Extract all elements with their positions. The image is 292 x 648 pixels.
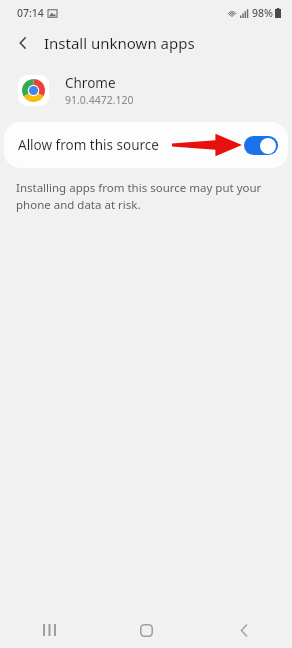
button[interactable]: Home <box>98 612 195 648</box>
staticText: Allow from this source <box>18 136 159 154</box>
staticText: Installing apps from this source may put… <box>16 180 262 213</box>
button[interactable]: Back <box>8 28 38 58</box>
button[interactable]: Chrome <box>0 66 292 114</box>
staticText: 07:14 <box>17 6 44 20</box>
button[interactable]: Back <box>195 612 292 648</box>
staticText: Install unknown apps <box>44 33 195 53</box>
staticText: 98% <box>252 6 273 20</box>
button[interactable]: Allow from this source toggle <box>244 136 278 155</box>
button[interactable]: Allow from this source <box>4 122 288 168</box>
staticText: 91.0.4472.120 <box>65 93 134 107</box>
button[interactable]: Recent apps <box>0 612 98 648</box>
staticText: Chrome <box>65 74 116 92</box>
